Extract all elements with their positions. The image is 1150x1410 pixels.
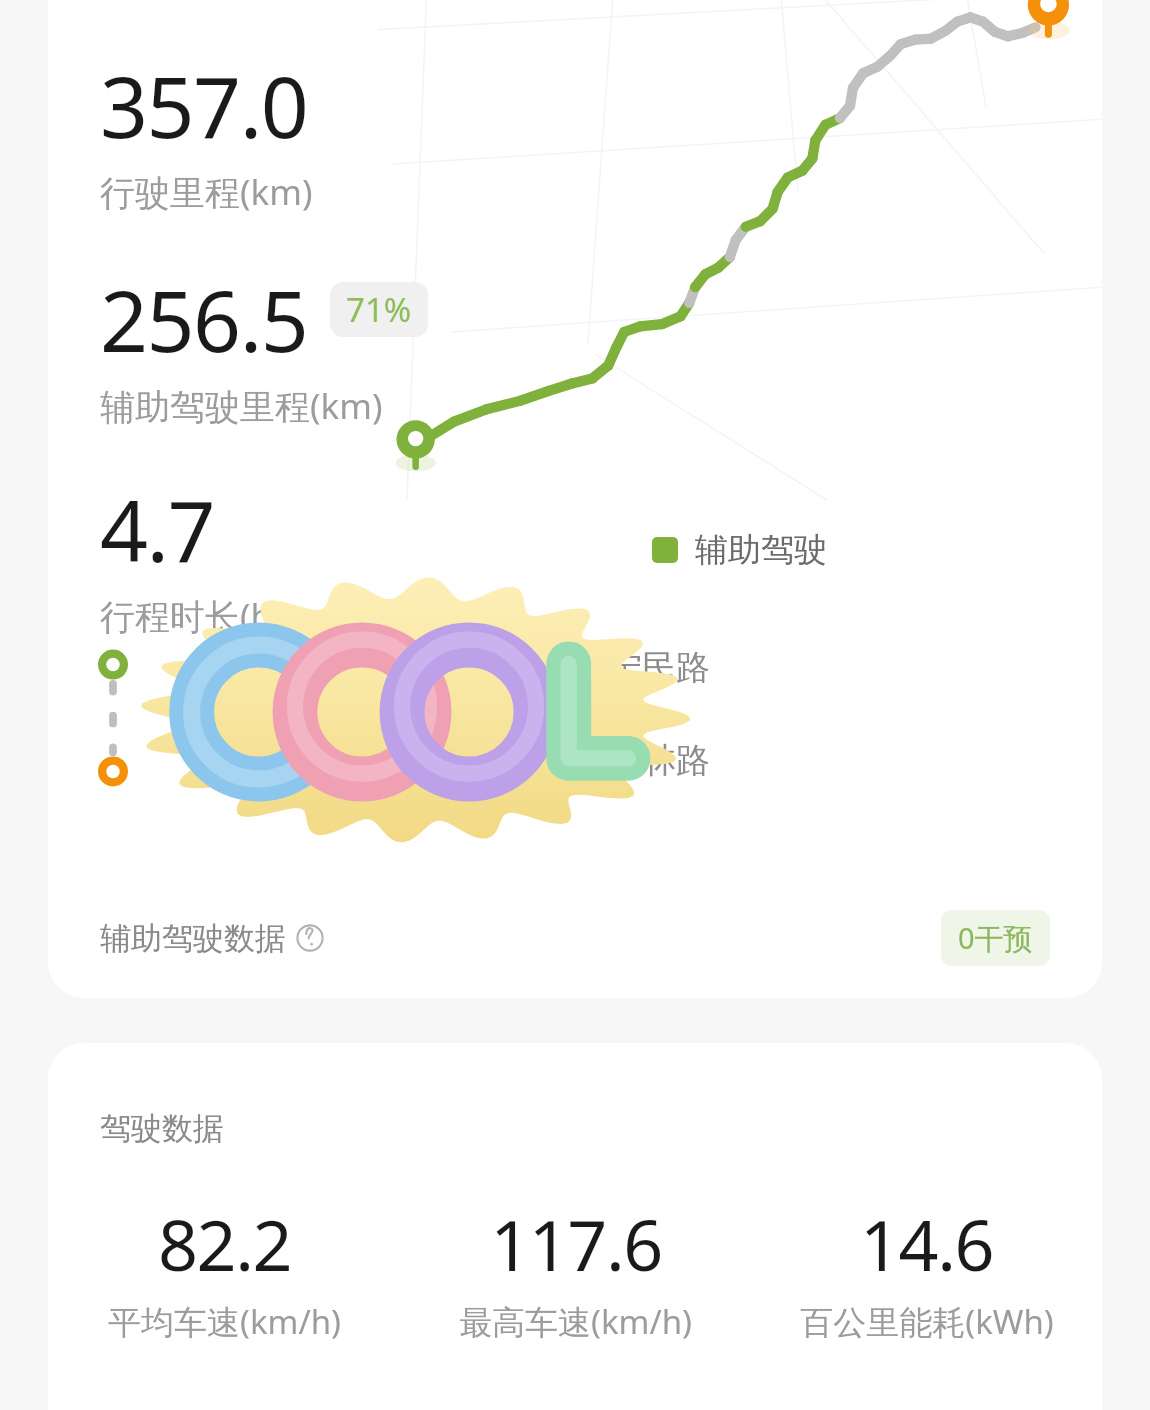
staticText: 357.0 — [100, 48, 308, 162]
staticText: 14.6 — [860, 1196, 993, 1291]
staticText: 行程时长(h) — [100, 592, 283, 640]
button[interactable]: 驾驶数据 — [48, 1043, 1102, 1410]
staticText: 4.7 — [100, 472, 215, 586]
button[interactable]: 71% — [346, 287, 412, 332]
button[interactable]: 117.6 — [400, 1196, 751, 1344]
staticText: 海林路 — [608, 739, 710, 782]
staticText: 最高车速(km/h) — [459, 1299, 692, 1344]
staticText: 82.2 — [158, 1196, 291, 1291]
staticText: 百公里能耗(kWh) — [800, 1299, 1054, 1344]
staticText: 0干预 — [958, 918, 1033, 958]
staticText: 平均车速(km/h) — [108, 1299, 341, 1344]
staticText: 驾驶数据 — [100, 1109, 224, 1148]
staticText: 71% — [346, 287, 412, 332]
button[interactable]: 辅助驾驶 — [652, 529, 827, 571]
staticText: 辅助驾驶里程(km) — [100, 382, 383, 430]
staticText: 辅助驾驶数据 — [100, 919, 286, 958]
button[interactable]: 357.0 — [48, 0, 1102, 998]
button[interactable]: 14.6 — [751, 1196, 1102, 1344]
staticText: 行驶里程(km) — [100, 168, 313, 216]
staticText: 辅助驾驶 — [695, 529, 827, 571]
staticText: 宁民路 — [608, 646, 710, 689]
button[interactable]: 辅助驾驶数据 — [100, 900, 1050, 976]
button[interactable]: 82.2 — [48, 1196, 400, 1344]
staticText: 256.5 — [100, 262, 308, 376]
staticText: 117.6 — [490, 1196, 662, 1291]
button[interactable]: 0干预 — [958, 918, 1033, 958]
button[interactable]: 帮助说明 — [296, 924, 324, 952]
